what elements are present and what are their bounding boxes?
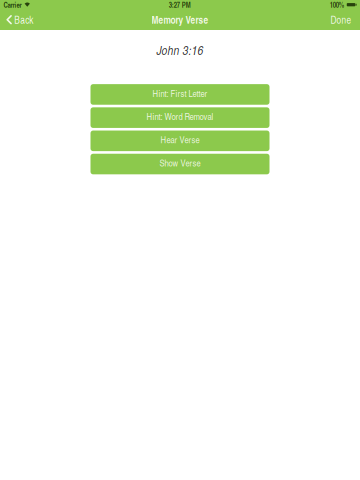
- staticText: Back: [14, 13, 33, 27]
- button[interactable]: Show Verse: [90, 154, 269, 174]
- button[interactable]: Done: [322, 9, 360, 30]
- staticText: Done: [330, 13, 351, 27]
- staticText: Hint: Word Removal: [146, 110, 213, 123]
- button[interactable]: Hear Verse: [90, 130, 269, 151]
- button[interactable]: Hint: First Letter: [90, 84, 269, 105]
- staticText: Show Verse: [159, 156, 200, 169]
- staticText: John 3:16: [156, 41, 203, 59]
- staticText: Hint: First Letter: [152, 87, 207, 99]
- staticText: Hear Verse: [160, 133, 199, 146]
- button[interactable]: Hint: Word Removal: [90, 107, 269, 128]
- staticText: Memory Verse: [151, 12, 208, 27]
- button[interactable]: Back: [0, 9, 40, 30]
- staticText: Carrier: [3, 0, 21, 10]
- staticText: 3:27 PM: [169, 0, 191, 10]
- staticText: 100%: [330, 0, 344, 10]
